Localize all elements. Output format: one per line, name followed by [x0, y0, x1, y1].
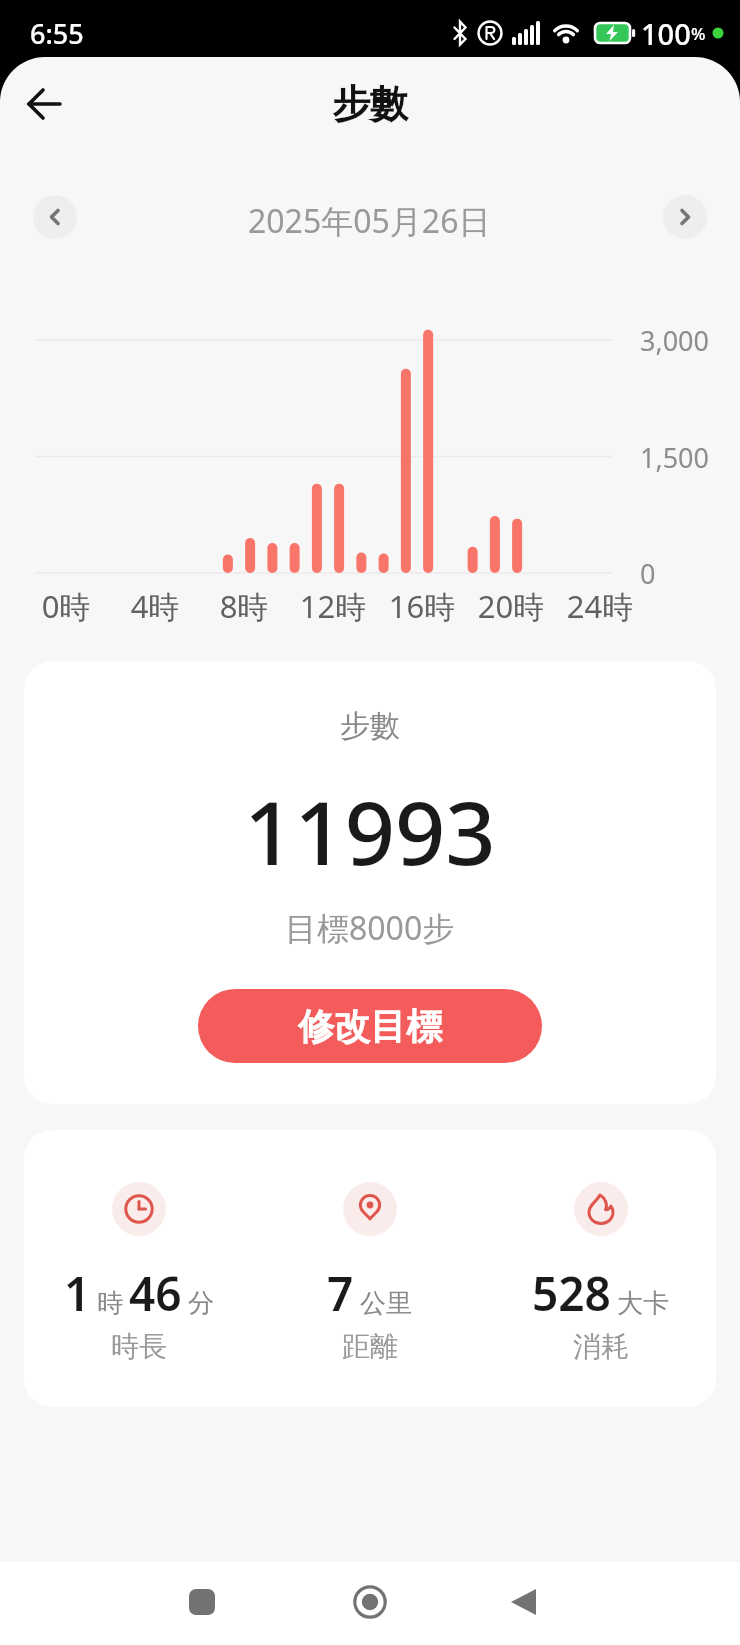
button[interactable]: [353, 1585, 387, 1619]
staticText: 步數: [332, 80, 408, 128]
staticText: 1,500: [640, 439, 710, 476]
staticText: 24時: [555, 585, 645, 627]
staticText: 6:55: [30, 15, 84, 52]
button[interactable]: [33, 195, 77, 239]
staticText: 分: [188, 1287, 214, 1320]
staticText: 7: [327, 1262, 354, 1325]
staticText: 12時: [288, 585, 378, 627]
staticText: 16時: [377, 585, 467, 627]
staticText: 距離: [342, 1329, 398, 1364]
button[interactable]: [663, 195, 707, 239]
staticText: 修改目標: [298, 1004, 442, 1049]
staticText: 46: [129, 1262, 182, 1325]
button[interactable]: [28, 87, 62, 121]
staticText: 4時: [110, 585, 200, 627]
staticText: 1: [64, 1262, 91, 1325]
staticText: 時: [97, 1287, 123, 1320]
staticText: 步數: [340, 707, 400, 745]
staticText: 大卡: [617, 1287, 669, 1320]
staticText: 2025年05月26日: [248, 199, 491, 243]
staticText: 3,000: [640, 322, 710, 359]
staticText: 消耗: [573, 1329, 629, 1364]
staticText: 20時: [466, 585, 556, 627]
button[interactable]: 修改目標: [198, 989, 542, 1063]
staticText: 公里: [360, 1287, 412, 1320]
staticText: 528: [532, 1262, 611, 1325]
staticText: 時長: [111, 1329, 167, 1364]
staticText: 0時: [21, 585, 111, 627]
button[interactable]: [189, 1589, 215, 1615]
staticText: 目標8000步: [285, 906, 455, 950]
staticText: 100: [641, 14, 691, 53]
staticText: 8時: [199, 585, 289, 627]
staticText: %: [691, 22, 706, 45]
button[interactable]: [509, 1588, 537, 1616]
staticText: 11993: [244, 771, 496, 891]
staticText: 0: [640, 555, 656, 592]
